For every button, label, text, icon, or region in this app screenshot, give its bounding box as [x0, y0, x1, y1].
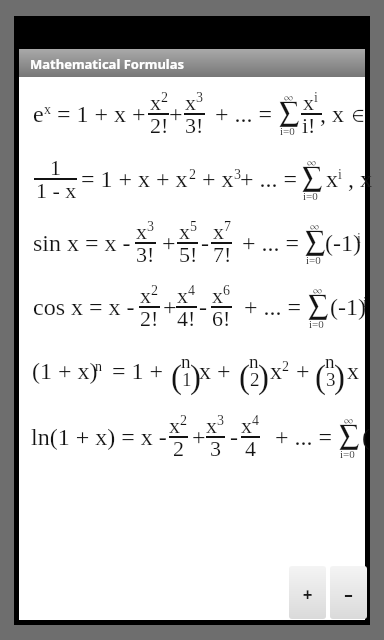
- staticText: x: [206, 413, 217, 437]
- staticText: 2: [250, 369, 260, 390]
- staticText: n: [325, 351, 335, 372]
- staticText: (: [171, 359, 182, 396]
- staticText: -: [224, 424, 244, 451]
- staticText: i=0: [303, 190, 318, 202]
- staticText: 3: [217, 413, 224, 429]
- staticText: ∞: [284, 92, 293, 103]
- staticText: x: [270, 358, 282, 385]
- staticText: = 1 + x +: [51, 101, 152, 128]
- staticText: (: [362, 424, 370, 451]
- staticText: x: [303, 90, 314, 114]
- staticText: 3!: [136, 242, 155, 266]
- staticText: (-1): [330, 294, 366, 321]
- staticText: x: [213, 219, 224, 243]
- staticText: ∑: [308, 290, 329, 322]
- staticText: 3: [326, 369, 336, 390]
- staticText: –: [330, 583, 367, 606]
- staticText: ∞: [307, 157, 316, 168]
- staticText: x: [136, 219, 147, 243]
- staticText: i: [357, 231, 361, 247]
- staticText: 2: [282, 359, 289, 375]
- staticText: x +: [199, 358, 237, 385]
- staticText: i: [363, 295, 367, 311]
- staticText: 2!: [140, 306, 159, 330]
- staticText: + ... =: [236, 230, 306, 257]
- staticText: -: [193, 294, 213, 321]
- staticText: x: [140, 283, 151, 307]
- staticText: 4: [188, 283, 195, 299]
- staticText: ∑: [302, 162, 323, 194]
- staticText: ∞: [344, 415, 353, 426]
- staticText: 7!: [213, 242, 232, 266]
- staticText: 2!: [150, 113, 169, 137]
- staticText: 1: [182, 369, 192, 390]
- staticText: x: [177, 283, 188, 307]
- staticText: e: [33, 101, 44, 128]
- staticText: i!: [302, 113, 316, 137]
- staticText: 3: [147, 219, 154, 235]
- staticText: 4: [245, 436, 256, 460]
- staticText: 3: [210, 436, 221, 460]
- staticText: i=0: [309, 318, 324, 330]
- staticText: 3: [234, 167, 241, 183]
- staticText: 5: [190, 219, 197, 235]
- button[interactable]: Zoom in: [289, 566, 326, 619]
- staticText: i=0: [340, 448, 355, 460]
- staticText: cos x = x -: [33, 294, 141, 321]
- staticText: 3: [196, 90, 203, 106]
- staticText: ln(1 + x) = x -: [31, 424, 173, 451]
- staticText: ∑: [305, 226, 326, 258]
- staticText: 7: [224, 219, 231, 235]
- staticText: x: [326, 166, 338, 193]
- staticText: x: [241, 413, 252, 437]
- staticText: i: [338, 167, 342, 183]
- staticText: n: [249, 351, 259, 372]
- staticText: x: [150, 90, 161, 114]
- staticText: (: [315, 359, 326, 396]
- staticText: 2: [189, 167, 196, 183]
- staticText: (-1): [325, 230, 361, 257]
- staticText: ): [334, 359, 345, 396]
- staticText: i=0: [280, 125, 295, 137]
- staticText: (1 + x): [32, 358, 98, 385]
- staticText: i: [314, 90, 318, 106]
- staticText: = 1 + x + x: [75, 166, 188, 193]
- staticText: 6: [223, 283, 230, 299]
- staticText: 5!: [179, 242, 198, 266]
- staticText: Mathematical Formulas: [30, 55, 185, 73]
- staticText: ∑: [339, 420, 360, 452]
- staticText: + x: [196, 166, 234, 193]
- staticText: 6!: [212, 306, 231, 330]
- staticText: + ... =: [238, 294, 308, 321]
- staticText: 2: [180, 413, 187, 429]
- staticText: , x: [320, 101, 350, 128]
- staticText: +: [157, 294, 183, 321]
- staticText: 4: [252, 413, 259, 429]
- button[interactable]: Mathematical Formulas: [19, 49, 365, 77]
- staticText: = 1 +: [106, 358, 170, 385]
- staticText: , x: [342, 166, 372, 193]
- staticText: ∑: [279, 97, 300, 129]
- staticText: x: [44, 102, 51, 118]
- staticText: -: [195, 230, 215, 257]
- staticText: +: [186, 424, 212, 451]
- staticText: +: [290, 358, 316, 385]
- staticText: +: [156, 230, 182, 257]
- staticText: 1: [50, 155, 61, 179]
- staticText: + ... =: [209, 101, 279, 128]
- button[interactable]: Zoom out: [330, 566, 367, 619]
- staticText: ): [258, 359, 269, 396]
- staticText: ∞: [310, 221, 319, 232]
- staticText: 2: [151, 283, 158, 299]
- staticText: x: [169, 413, 180, 437]
- staticText: n: [181, 351, 191, 372]
- staticText: ∞: [313, 285, 322, 296]
- staticText: 4!: [177, 306, 196, 330]
- staticText: ): [190, 359, 201, 396]
- staticText: n: [95, 359, 102, 375]
- staticText: +: [163, 101, 189, 128]
- staticText: x: [185, 90, 196, 114]
- staticText: i=0: [306, 254, 321, 266]
- staticText: x: [347, 358, 359, 385]
- staticText: +: [289, 583, 326, 606]
